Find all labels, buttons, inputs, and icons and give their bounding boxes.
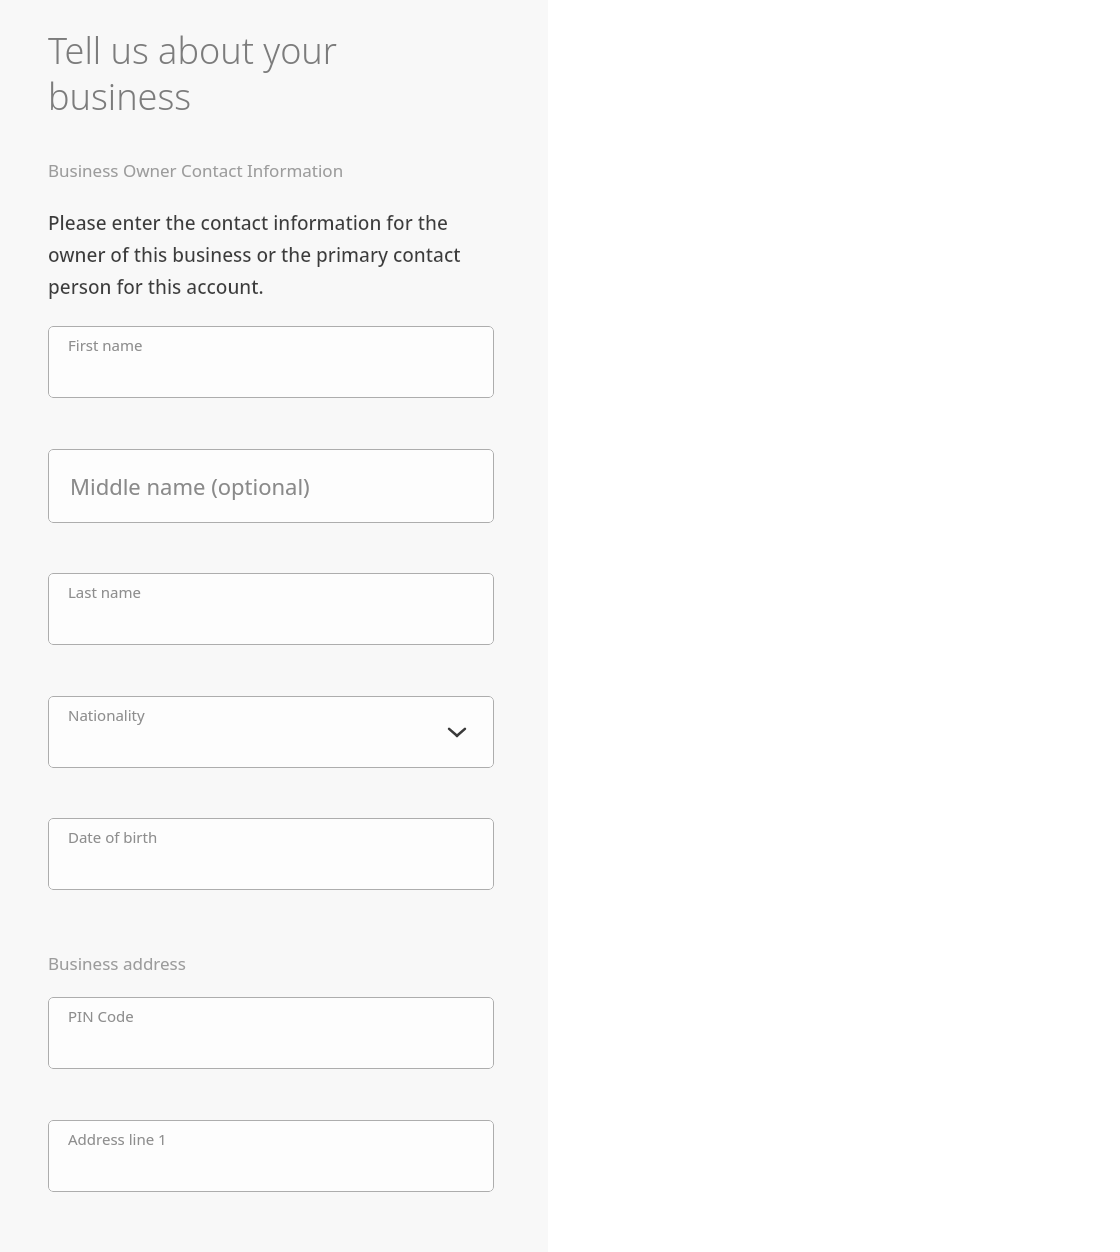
staticText: Address line 1 <box>68 1129 167 1149</box>
button[interactable]: Date of birth <box>48 818 494 890</box>
staticText: First name <box>68 335 143 355</box>
button[interactable]: Last name <box>48 573 494 645</box>
staticText: Nationality <box>68 705 145 725</box>
staticText: Date of birth <box>68 827 158 847</box>
staticText: Middle name (optional) <box>70 471 310 501</box>
button[interactable]: Middle name (optional) <box>48 449 494 523</box>
button[interactable]: PIN Code <box>48 997 494 1069</box>
staticText: Business address <box>48 952 186 975</box>
button[interactable]: Address line 1 <box>48 1120 494 1192</box>
staticText: Please enter the contact information for… <box>48 210 490 300</box>
staticText: PIN Code <box>68 1006 134 1026</box>
staticText: Tell us about your business <box>48 26 337 121</box>
staticText: Business Owner Contact Information <box>48 159 344 182</box>
button[interactable]: Nationality <box>48 696 494 768</box>
staticText: Last name <box>68 582 141 602</box>
button[interactable]: First name <box>48 326 494 398</box>
other: Open nationality list <box>444 719 470 745</box>
